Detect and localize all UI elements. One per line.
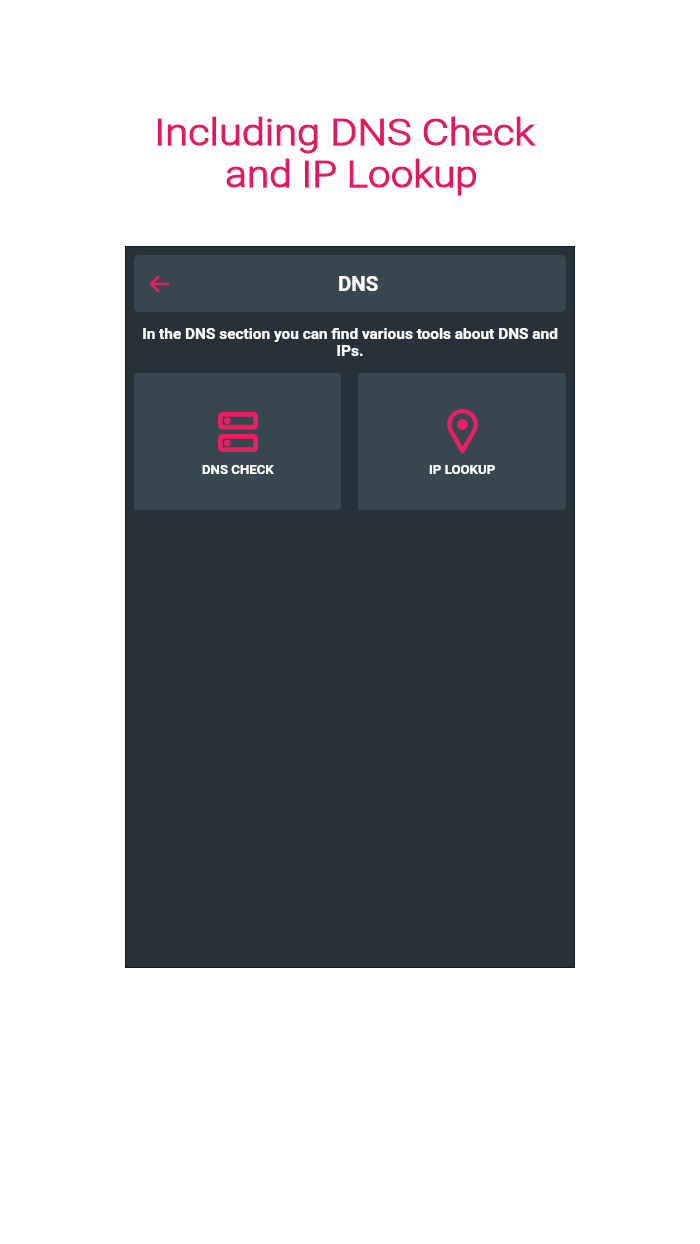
button[interactable]: DNS CHECK [134,373,341,510]
button[interactable]: IP LOOKUP [358,373,566,510]
staticText: In the DNS section you can find various … [140,325,560,360]
staticText: DNS CHECK [202,462,274,477]
staticText: and IP Lookup [225,153,478,195]
button[interactable]: Back [141,265,179,303]
staticText: IP LOOKUP [429,462,496,477]
staticText: DNS [338,272,379,296]
staticText: and IP Lookup [225,153,478,195]
staticText: Including DNS Check [154,110,535,154]
staticText: Including DNS Check [154,110,535,154]
